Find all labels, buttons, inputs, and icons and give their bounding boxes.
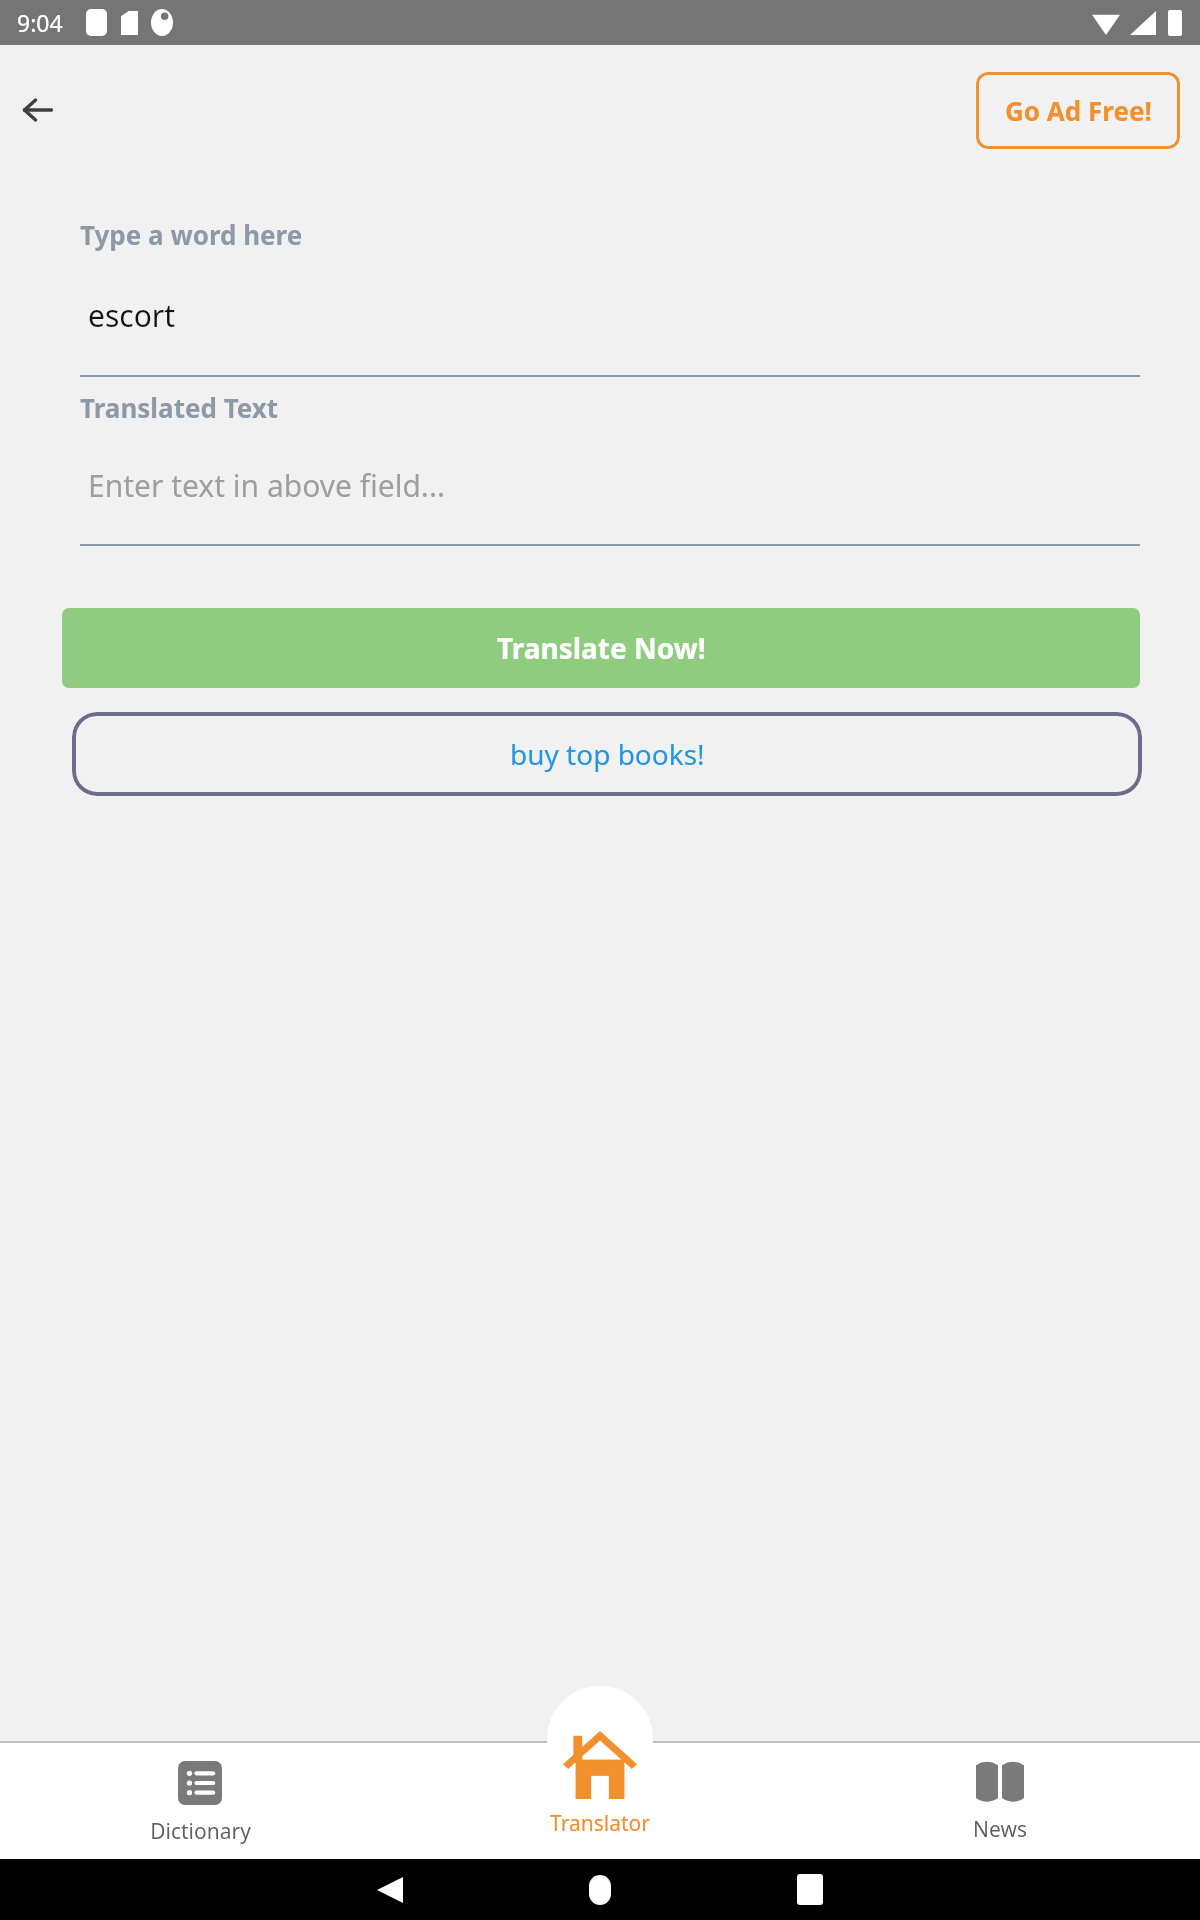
button[interactable]: Enter text in above field... (80, 465, 1140, 506)
staticText: Enter text in above field... (88, 465, 445, 506)
button[interactable]: Go Ad Free! (976, 72, 1180, 149)
staticText: escort (88, 295, 176, 336)
staticText: 9:04 (17, 7, 63, 38)
button[interactable]: Dictionary (0, 1713, 400, 1860)
staticText: buy top books! (510, 735, 705, 773)
button[interactable]: escort (80, 295, 1140, 336)
button[interactable]: Translate Now! (62, 608, 1140, 688)
staticText: News (973, 1815, 1027, 1844)
staticText: Translator (550, 1809, 650, 1838)
staticText: Translated Text (80, 390, 279, 425)
button[interactable]: Translator (400, 1713, 800, 1860)
staticText: Translate Now! (497, 629, 706, 667)
staticText: Type a word here (80, 217, 303, 252)
staticText: Dictionary (150, 1817, 251, 1846)
button[interactable]: News (800, 1713, 1200, 1860)
button[interactable]: buy top books! (72, 712, 1142, 796)
button[interactable]: Back (8, 80, 68, 140)
staticText: Go Ad Free! (1005, 93, 1152, 128)
